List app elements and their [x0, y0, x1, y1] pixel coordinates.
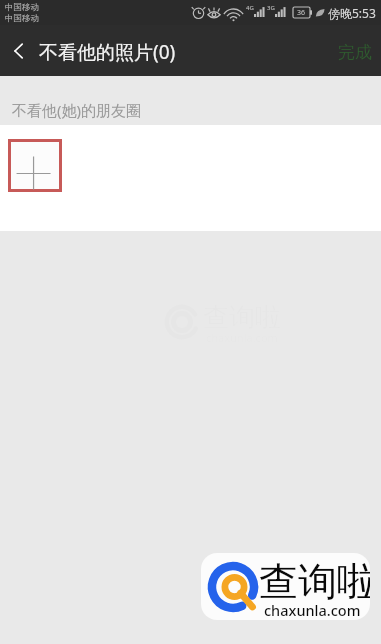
- staticText: 傍晚5:53: [328, 5, 376, 21]
- button[interactable]: Add: [8, 139, 62, 192]
- staticText: 不看他的照片(0): [39, 39, 176, 65]
- staticText: chaxunla.com: [264, 600, 361, 620]
- staticText: 不看他(她)的朋友圈: [12, 100, 142, 120]
- staticText: 3G: [267, 4, 275, 12]
- staticText: 完成: [338, 42, 372, 63]
- staticText: 中国移动: [5, 13, 39, 24]
- button[interactable]: Back: [0, 25, 38, 76]
- button[interactable]: 完成: [320, 26, 381, 75]
- staticText: 中国移动: [5, 2, 39, 13]
- staticText: 36: [297, 8, 306, 18]
- staticText: 查询啦: [259, 557, 370, 606]
- staticText: 4G: [246, 4, 254, 12]
